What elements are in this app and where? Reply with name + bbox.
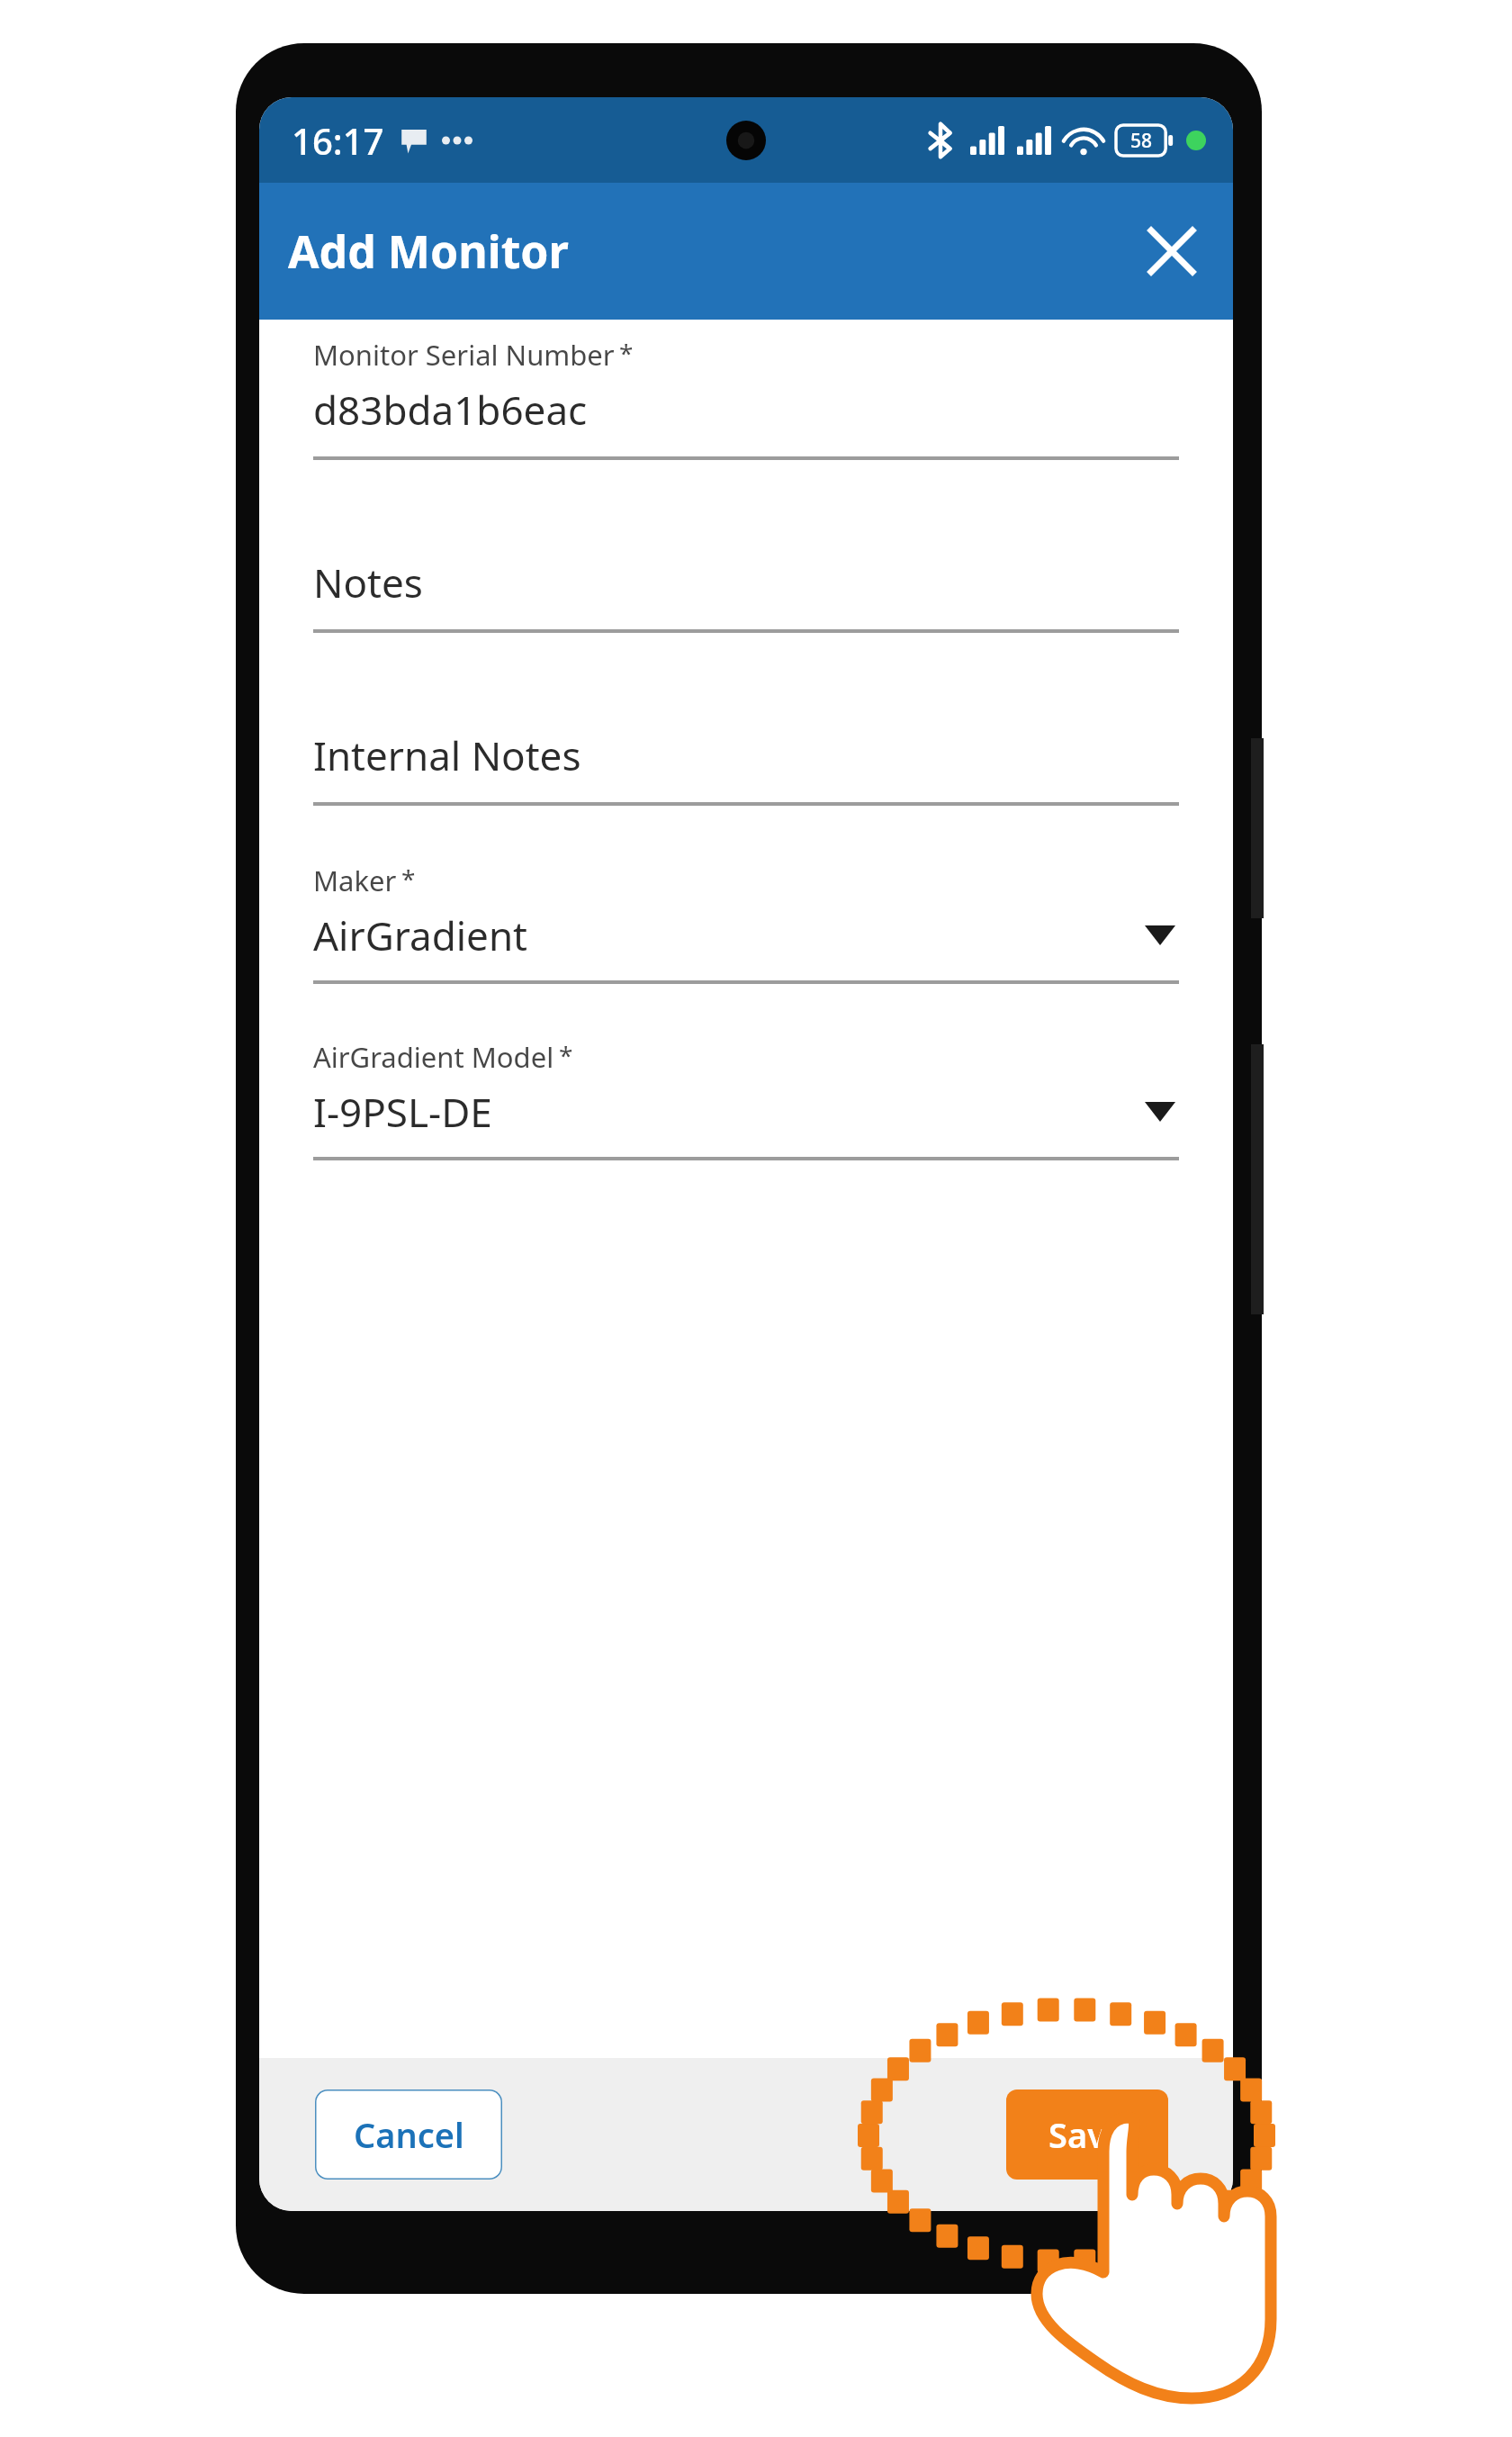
- button[interactable]: AirGradient: [313, 908, 1179, 962]
- staticText: 58: [1130, 128, 1153, 154]
- staticText: AirGradient: [313, 908, 527, 962]
- staticText: *: [401, 862, 416, 896]
- staticText: Save: [1048, 2111, 1127, 2158]
- staticText: Maker: [313, 862, 397, 899]
- staticText: *: [559, 1038, 573, 1072]
- staticText: *: [619, 336, 634, 370]
- staticText: I-9PSL-DE: [313, 1085, 492, 1139]
- staticText: d83bda1b6eac: [313, 383, 588, 437]
- button[interactable]: I-9PSL-DE: [313, 1085, 1179, 1139]
- staticText: Notes: [313, 555, 423, 609]
- staticText: Internal Notes: [313, 728, 581, 782]
- staticText: Add Monitor: [288, 221, 569, 282]
- staticText: Cancel: [354, 2111, 464, 2158]
- button[interactable]: Close: [1129, 208, 1215, 294]
- staticText: 16:17: [292, 116, 384, 165]
- button[interactable]: Save: [1006, 2090, 1168, 2180]
- button[interactable]: Cancel: [315, 2090, 502, 2180]
- staticText: AirGradient Model: [313, 1038, 554, 1076]
- staticText: Monitor Serial Number: [313, 336, 615, 374]
